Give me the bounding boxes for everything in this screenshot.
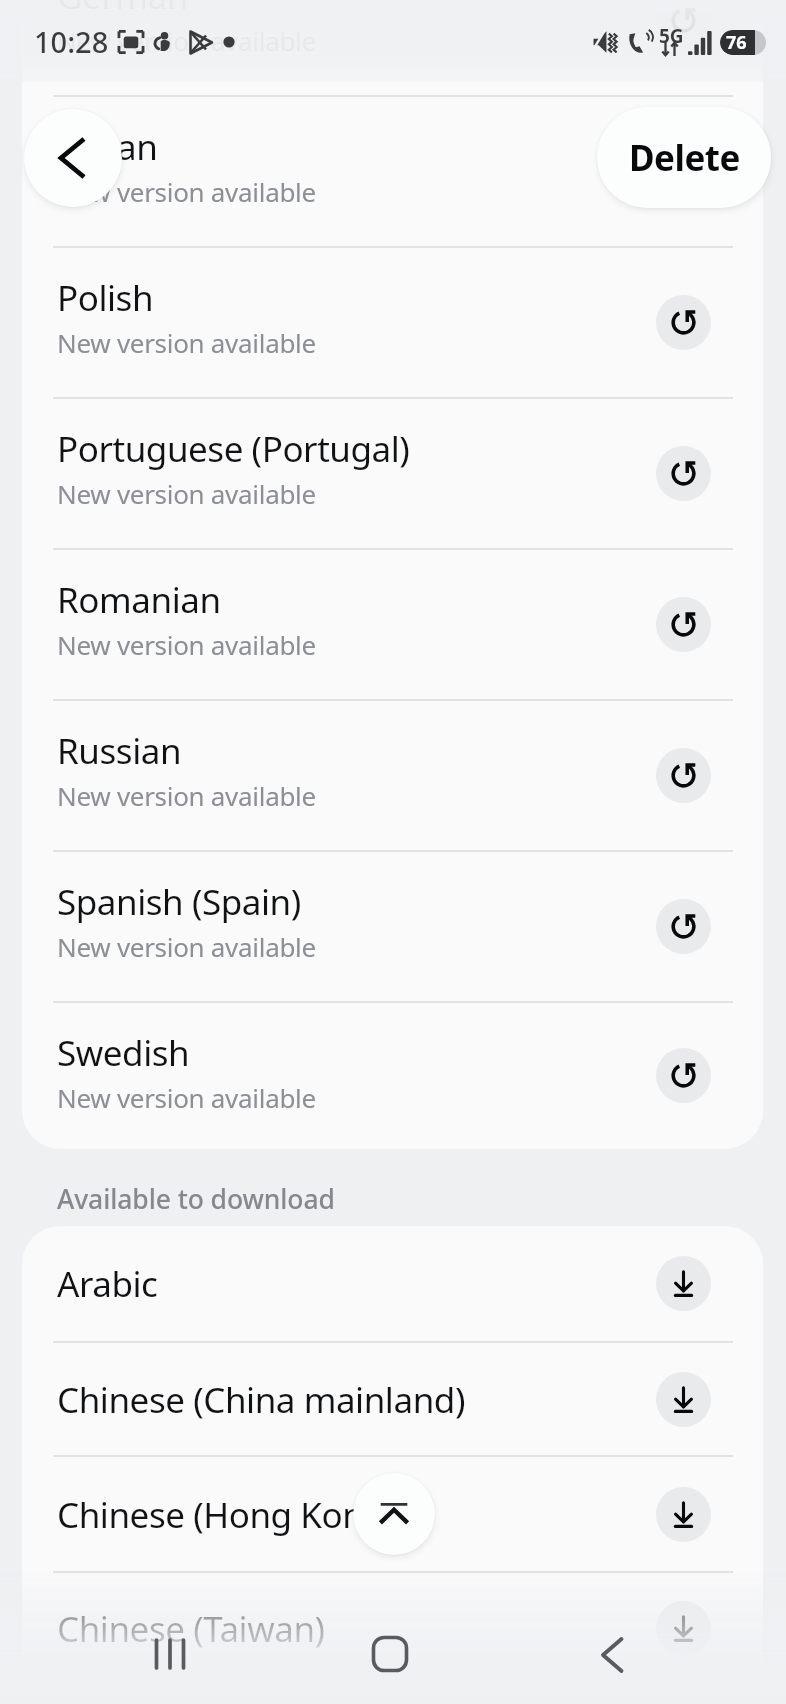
button[interactable]: Italian (22, 97, 763, 248)
staticText: Portuguese (Portugal) (57, 425, 410, 473)
staticText: Chinese (Taiwan) (57, 1605, 325, 1653)
button[interactable]: Download (656, 1487, 711, 1542)
button[interactable]: Update (656, 899, 711, 954)
staticText: New version available (57, 325, 316, 360)
button[interactable]: Update (656, 144, 711, 199)
button[interactable]: Update (656, 0, 711, 48)
button[interactable]: Chinese (Hong Kong) (22, 1457, 763, 1573)
button[interactable]: Chinese (Taiwan) (22, 1573, 763, 1685)
button[interactable]: Download (656, 1256, 711, 1311)
button[interactable]: Swedish (22, 1003, 763, 1149)
button[interactable]: Spanish (Spain) (22, 852, 763, 1003)
staticText: Polish (57, 274, 154, 322)
button[interactable]: Update (656, 1048, 711, 1103)
staticText: 76 (726, 30, 747, 55)
staticText: Arabic (57, 1260, 158, 1308)
staticText: New version available (57, 929, 316, 964)
staticText: Available to download (57, 1181, 335, 1217)
staticText: Chinese (China mainland) (57, 1376, 465, 1424)
staticText: 10:28 (34, 22, 109, 61)
staticText: 5G (659, 23, 684, 49)
staticText: New version available (57, 174, 316, 209)
button[interactable]: Recents (130, 1614, 210, 1694)
button[interactable]: Update (656, 295, 711, 350)
staticText: Spanish (Spain) (57, 878, 301, 926)
button[interactable]: Polish (22, 248, 763, 399)
button[interactable]: Romanian (22, 550, 763, 701)
staticText: Italian (57, 123, 158, 171)
staticText: Russian (57, 727, 182, 775)
button[interactable]: Back (24, 109, 122, 207)
button[interactable]: Delete (597, 107, 771, 208)
staticText: New version available (57, 627, 316, 662)
staticText: Chinese (Hong Kong) (57, 1491, 395, 1539)
staticText: New version available (57, 1080, 316, 1115)
button[interactable]: Arabic (22, 1226, 763, 1343)
staticText: Swedish (57, 1029, 190, 1077)
button[interactable]: Portuguese (Portugal) (22, 399, 763, 550)
button[interactable]: Home (350, 1614, 430, 1694)
button[interactable]: Russian (22, 701, 763, 852)
staticText: New version available (57, 476, 316, 511)
staticText: New version available (57, 778, 316, 813)
button[interactable]: Chinese (China mainland) (22, 1343, 763, 1457)
button[interactable]: Update (656, 597, 711, 652)
button[interactable]: Scroll to top (353, 1473, 435, 1555)
staticText: Romanian (57, 576, 221, 624)
button[interactable]: Download (656, 1372, 711, 1427)
button[interactable]: Download (656, 1601, 711, 1656)
staticText: New version available (57, 23, 316, 58)
button[interactable]: German (22, 0, 763, 97)
button[interactable]: Back (572, 1615, 652, 1695)
staticText: Delete (629, 134, 740, 182)
button[interactable]: Update (656, 748, 711, 803)
button[interactable]: Update (656, 446, 711, 501)
